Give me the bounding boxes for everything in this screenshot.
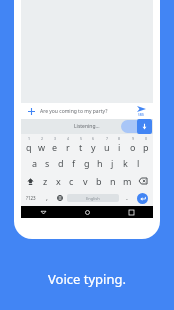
button[interactable]: d xyxy=(54,154,67,172)
button[interactable]: . xyxy=(120,190,133,206)
staticText: p xyxy=(143,141,149,153)
staticText: f xyxy=(72,157,76,169)
staticText: j xyxy=(111,157,114,169)
staticText: v xyxy=(83,175,88,187)
button[interactable]: ?123 xyxy=(22,190,40,206)
button[interactable]: v xyxy=(78,172,92,190)
staticText: u xyxy=(104,141,110,153)
button[interactable]: Shift xyxy=(22,172,39,190)
staticText: k xyxy=(123,157,128,169)
staticText: Voice typing. xyxy=(0,270,174,288)
button[interactable]: Back xyxy=(21,206,65,218)
staticText: , xyxy=(46,193,48,203)
button[interactable]: 2 xyxy=(35,134,48,154)
staticText: English xyxy=(86,196,100,201)
staticText: w xyxy=(38,141,46,153)
button[interactable]: a xyxy=(29,154,41,172)
button[interactable]: x xyxy=(52,172,65,190)
staticText: t xyxy=(79,141,83,153)
button[interactable]: g xyxy=(80,154,93,172)
button[interactable]: 3 xyxy=(48,134,61,154)
button[interactable]: 8 xyxy=(113,134,126,154)
staticText: . xyxy=(126,193,128,203)
button[interactable]: f xyxy=(67,154,80,172)
button[interactable]: Voice input xyxy=(137,119,152,134)
button[interactable]: Add attachment xyxy=(24,104,38,118)
button[interactable]: s xyxy=(41,154,54,172)
staticText: 8 xyxy=(118,136,121,141)
staticText: 9 xyxy=(132,136,135,141)
staticText: z xyxy=(43,175,48,187)
staticText: l xyxy=(137,157,140,169)
button[interactable]: 4 xyxy=(61,134,74,154)
button[interactable]: Change language xyxy=(53,190,66,206)
staticText: d xyxy=(58,157,64,169)
button[interactable]: m xyxy=(120,172,134,190)
staticText: g xyxy=(84,157,90,169)
staticText: b xyxy=(96,175,102,187)
staticText: 7 xyxy=(106,136,109,141)
staticText: y xyxy=(91,141,96,153)
button[interactable]: 9 xyxy=(126,134,139,154)
staticText: c xyxy=(69,175,74,187)
staticText: h xyxy=(97,157,103,169)
button[interactable]: c xyxy=(65,172,78,190)
staticText: e xyxy=(52,141,58,153)
button[interactable]: b xyxy=(92,172,106,190)
staticText: o xyxy=(130,141,136,153)
staticText: SMS xyxy=(138,113,145,117)
button[interactable]: , xyxy=(40,190,53,206)
button[interactable]: Send xyxy=(132,103,150,119)
staticText: s xyxy=(45,157,50,169)
button[interactable]: h xyxy=(93,154,106,172)
staticText: n xyxy=(110,175,116,187)
button[interactable]: 6 xyxy=(87,134,100,154)
button[interactable]: n xyxy=(106,172,120,190)
staticText: 6 xyxy=(92,136,95,141)
staticText: Listening... xyxy=(74,123,100,130)
button[interactable]: 5 xyxy=(74,134,87,154)
button[interactable]: l xyxy=(132,154,145,172)
staticText: 2 xyxy=(41,136,44,141)
button[interactable]: Recent apps xyxy=(109,206,153,218)
staticText: q xyxy=(26,141,32,153)
staticText: 3 xyxy=(54,136,57,141)
button[interactable]: 7 xyxy=(100,134,113,154)
button[interactable]: Home xyxy=(65,206,109,218)
staticText: 0 xyxy=(145,136,148,141)
staticText: 4 xyxy=(67,136,70,141)
button[interactable]: Enter xyxy=(137,193,148,204)
staticText: a xyxy=(32,157,38,169)
staticText: r xyxy=(66,141,70,153)
staticText: 5 xyxy=(80,136,83,141)
staticText: i xyxy=(118,141,121,153)
staticText: Are you coming to my party? xyxy=(40,108,108,115)
staticText: m xyxy=(123,175,132,187)
button[interactable]: Backspace xyxy=(134,172,152,190)
button[interactable]: k xyxy=(119,154,132,172)
staticText: ?123 xyxy=(26,195,36,201)
staticText: x xyxy=(56,175,61,187)
button[interactable]: English xyxy=(67,194,119,202)
button[interactable]: 1 xyxy=(22,134,35,154)
staticText: 1 xyxy=(28,136,31,141)
button[interactable]: j xyxy=(106,154,119,172)
button[interactable]: 0 xyxy=(139,134,152,154)
button[interactable]: z xyxy=(39,172,52,190)
